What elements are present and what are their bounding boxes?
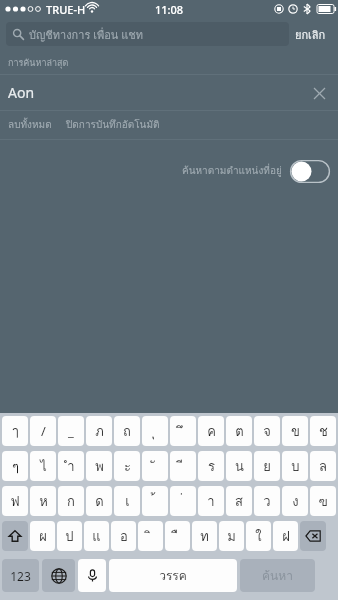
button[interactable]: อ — [111, 521, 136, 551]
staticText: ๅ — [12, 421, 19, 442]
button[interactable]: Aon — [0, 75, 338, 110]
button[interactable]: ำ — [58, 451, 84, 481]
button[interactable]: ฝ — [273, 521, 298, 551]
other: Location toggle — [290, 160, 330, 183]
staticText: ฃ — [318, 491, 328, 512]
button[interactable]: ี — [170, 451, 196, 481]
button[interactable]: แ — [84, 521, 109, 551]
button[interactable]: ร — [198, 451, 224, 481]
staticText: ๆ — [12, 456, 19, 477]
staticText: ห — [39, 491, 48, 512]
button[interactable]: ใ — [246, 521, 271, 551]
staticText: / — [41, 422, 46, 440]
button[interactable]: บัญชีทางการ เพื่อน แชท — [6, 22, 289, 46]
staticText: จ — [263, 421, 271, 442]
staticText: ด — [95, 491, 104, 512]
staticText: ก — [67, 491, 75, 512]
staticText: อ — [120, 526, 128, 547]
button[interactable]: ค้นหาตามตำแหน่งที่อยู่ — [0, 140, 338, 202]
button[interactable]: ั — [142, 451, 168, 481]
button[interactable]: ม — [219, 521, 244, 551]
button[interactable]: จ — [254, 416, 280, 446]
staticText: การค้นหาล่าสุด — [8, 56, 69, 70]
staticText: ท — [200, 526, 209, 547]
button[interactable]: Shift — [2, 521, 28, 551]
button[interactable]: ก — [58, 486, 84, 516]
staticText: วรรค — [159, 566, 187, 585]
staticText: แ — [92, 526, 101, 547]
button[interactable]: า — [198, 486, 224, 516]
button[interactable]: ้ — [142, 486, 168, 516]
staticText: Aon — [8, 83, 35, 102]
staticText: ฟ — [10, 491, 20, 512]
button[interactable]: ห — [30, 486, 56, 516]
button[interactable]: ท — [192, 521, 217, 551]
button[interactable]: ิ — [138, 521, 163, 551]
staticText: ยกเลิก — [295, 26, 326, 43]
button[interactable]: ไ — [30, 451, 56, 481]
button[interactable]: ช — [310, 416, 336, 446]
button[interactable]: 123 — [2, 559, 39, 592]
button[interactable]: ย — [254, 451, 280, 481]
button[interactable]: เ — [114, 486, 140, 516]
button[interactable]: ่ — [170, 486, 196, 516]
button[interactable]: ค — [198, 416, 224, 446]
button[interactable]: ๅ — [2, 416, 28, 446]
button[interactable]: ๆ — [2, 451, 28, 481]
staticText: ย — [263, 456, 271, 477]
staticText: TRUE-H — [46, 2, 86, 17]
button[interactable]: ข — [282, 416, 308, 446]
button[interactable]: Voice input — [78, 559, 106, 592]
button[interactable]: ป — [57, 521, 82, 551]
staticText: ะ — [124, 456, 131, 477]
button[interactable]: ล — [310, 451, 336, 481]
button[interactable]: ถ — [114, 416, 140, 446]
staticText: ไ — [40, 456, 47, 477]
button[interactable]: ผ — [30, 521, 55, 551]
staticText: บัญชีทางการ เพื่อน แชท — [29, 26, 144, 43]
staticText: ต — [235, 421, 244, 442]
staticText: พ — [95, 456, 104, 477]
button[interactable]: ภ — [86, 416, 112, 446]
staticText: ม — [227, 526, 236, 547]
staticText: 123 — [10, 568, 31, 584]
button[interactable]: วรรค — [109, 559, 237, 592]
button[interactable]: ส — [226, 486, 252, 516]
staticText: ลบทั้งหมด — [8, 117, 52, 133]
button[interactable]: / — [30, 416, 56, 446]
button[interactable]: พ — [86, 451, 112, 481]
button[interactable]: Backspace — [300, 521, 326, 551]
staticText: ถ — [123, 421, 131, 442]
staticText: ผ — [39, 526, 47, 547]
button[interactable]: ุ — [142, 416, 168, 446]
staticText: ส — [235, 491, 243, 512]
button[interactable]: Remove Aon — [308, 82, 330, 104]
button[interactable]: ง — [282, 486, 308, 516]
button[interactable]: ปิดการบันทึกอัตโนมัติ — [60, 112, 166, 138]
staticText: บ — [291, 456, 300, 477]
staticText: 11:08 — [155, 2, 184, 17]
staticText: ข — [291, 421, 300, 442]
button[interactable]: _ — [58, 416, 84, 446]
button[interactable]: น — [226, 451, 252, 481]
button[interactable]: ต — [226, 416, 252, 446]
button[interactable]: ว — [254, 486, 280, 516]
button[interactable]: ะ — [114, 451, 140, 481]
staticText: ว — [263, 491, 271, 512]
button[interactable]: ึ — [170, 416, 196, 446]
button[interactable]: ยกเลิก — [289, 22, 332, 47]
button[interactable]: ฟ — [2, 486, 28, 516]
staticText: ล — [319, 456, 327, 477]
button[interactable]: ฃ — [310, 486, 336, 516]
staticText: า — [207, 491, 215, 512]
button[interactable]: ื — [165, 521, 190, 551]
button[interactable]: ลบทั้งหมด — [0, 112, 60, 138]
button[interactable]: Change keyboard — [42, 559, 75, 592]
staticText: ป — [65, 526, 74, 547]
button[interactable]: ด — [86, 486, 112, 516]
staticText: ค้นหาตามตำแหน่งที่อยู่ — [182, 163, 282, 179]
button[interactable]: ค้นหา — [240, 559, 315, 592]
staticText: ง — [292, 491, 299, 512]
button[interactable]: บ — [282, 451, 308, 481]
staticText: ใ — [255, 526, 262, 547]
